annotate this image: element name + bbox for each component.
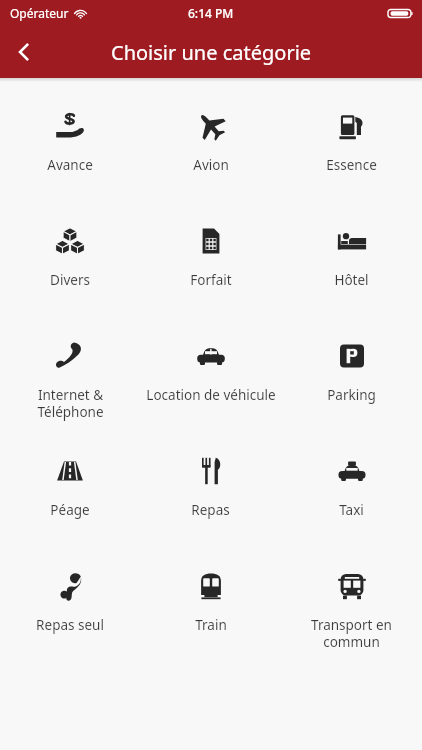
button[interactable]: Hôtel	[281, 207, 422, 322]
button[interactable]: Forfait	[140, 207, 281, 322]
staticText: Transport en commun	[311, 616, 392, 651]
button[interactable]: Internet & Téléphone	[0, 322, 140, 437]
staticText: Opérateur	[10, 5, 69, 21]
staticText: Train	[195, 616, 227, 634]
button[interactable]: Train	[140, 552, 281, 667]
staticText: Forfait	[190, 271, 232, 289]
staticText: Choisir une catégorie	[111, 39, 312, 66]
button[interactable]: Avance	[0, 92, 140, 207]
button[interactable]: Repas seul	[0, 552, 140, 667]
staticText: Repas seul	[36, 616, 104, 634]
button[interactable]: Essence	[281, 92, 422, 207]
button[interactable]: Divers	[0, 207, 140, 322]
staticText: Repas	[191, 501, 230, 519]
button[interactable]: Transport en commun	[281, 552, 422, 667]
staticText: Péage	[50, 501, 90, 519]
staticText: Essence	[326, 156, 377, 174]
button[interactable]: Avion	[140, 92, 281, 207]
button[interactable]: Taxi	[281, 437, 422, 552]
button[interactable]: Parking	[281, 322, 422, 437]
button[interactable]: Back	[0, 28, 48, 76]
staticText: Parking	[327, 386, 376, 404]
staticText: Internet & Téléphone	[37, 386, 104, 421]
staticText: Taxi	[339, 501, 364, 519]
button[interactable]: Location de véhicule	[140, 322, 281, 437]
button[interactable]: Repas	[140, 437, 281, 552]
staticText: 6:14 PM	[188, 5, 234, 21]
staticText: Hôtel	[334, 271, 369, 289]
staticText: Avance	[47, 156, 93, 174]
staticText: Location de véhicule	[146, 386, 276, 404]
staticText: Divers	[50, 271, 90, 289]
staticText: Avion	[193, 156, 229, 174]
button[interactable]: Péage	[0, 437, 140, 552]
